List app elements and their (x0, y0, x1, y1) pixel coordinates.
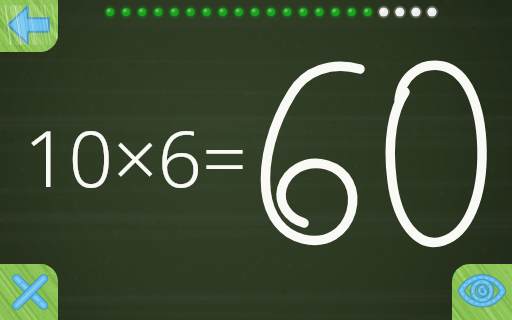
button[interactable]: Back (0, 0, 58, 52)
button[interactable]: Show answer (452, 264, 512, 320)
button[interactable]: Close (0, 264, 58, 320)
staticText: 10×6= (24, 104, 247, 210)
